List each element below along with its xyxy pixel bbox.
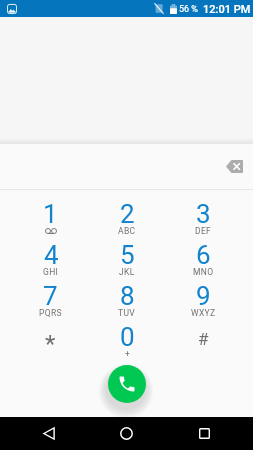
staticText: MNO: [193, 267, 214, 277]
button[interactable]: 6: [165, 240, 241, 281]
staticText: GHI: [43, 267, 59, 277]
button[interactable]: 0: [89, 322, 165, 363]
staticText: 2: [120, 199, 135, 224]
staticText: JKL: [119, 267, 135, 277]
staticText: TUV: [118, 308, 136, 318]
button[interactable]: 4: [12, 240, 89, 281]
staticText: DEF: [195, 226, 212, 236]
staticText: WXYZ: [191, 308, 216, 318]
button[interactable]: Recents: [187, 417, 221, 450]
staticText: +: [125, 349, 131, 359]
button[interactable]: *: [12, 322, 89, 363]
button[interactable]: 7: [12, 281, 89, 322]
staticText: PQRS: [39, 308, 62, 318]
staticText: 3: [196, 199, 211, 224]
staticText: 7: [43, 281, 58, 306]
button[interactable]: Backspace: [220, 152, 249, 181]
button[interactable]: 5: [89, 240, 165, 281]
button[interactable]: Call: [108, 365, 146, 403]
staticText: 0: [120, 322, 135, 347]
button[interactable]: Home: [109, 417, 143, 450]
staticText: 5: [120, 240, 135, 265]
button[interactable]: 8: [89, 281, 165, 322]
staticText: 8: [120, 281, 135, 306]
staticText: 4: [44, 240, 59, 265]
staticText: #: [198, 329, 209, 349]
staticText: 56 %: [179, 4, 198, 15]
staticText: 12:01 PM: [203, 3, 251, 16]
button[interactable]: 3: [165, 199, 241, 240]
button[interactable]: Back: [32, 417, 66, 450]
button[interactable]: 2: [89, 199, 165, 240]
button[interactable]: 1: [12, 199, 89, 240]
staticText: 1: [43, 199, 58, 224]
staticText: *: [45, 330, 56, 358]
button[interactable]: 9: [165, 281, 241, 322]
staticText: 6: [196, 240, 211, 265]
button[interactable]: #: [165, 322, 241, 363]
staticText: ABC: [118, 226, 136, 236]
staticText: 9: [196, 281, 211, 306]
